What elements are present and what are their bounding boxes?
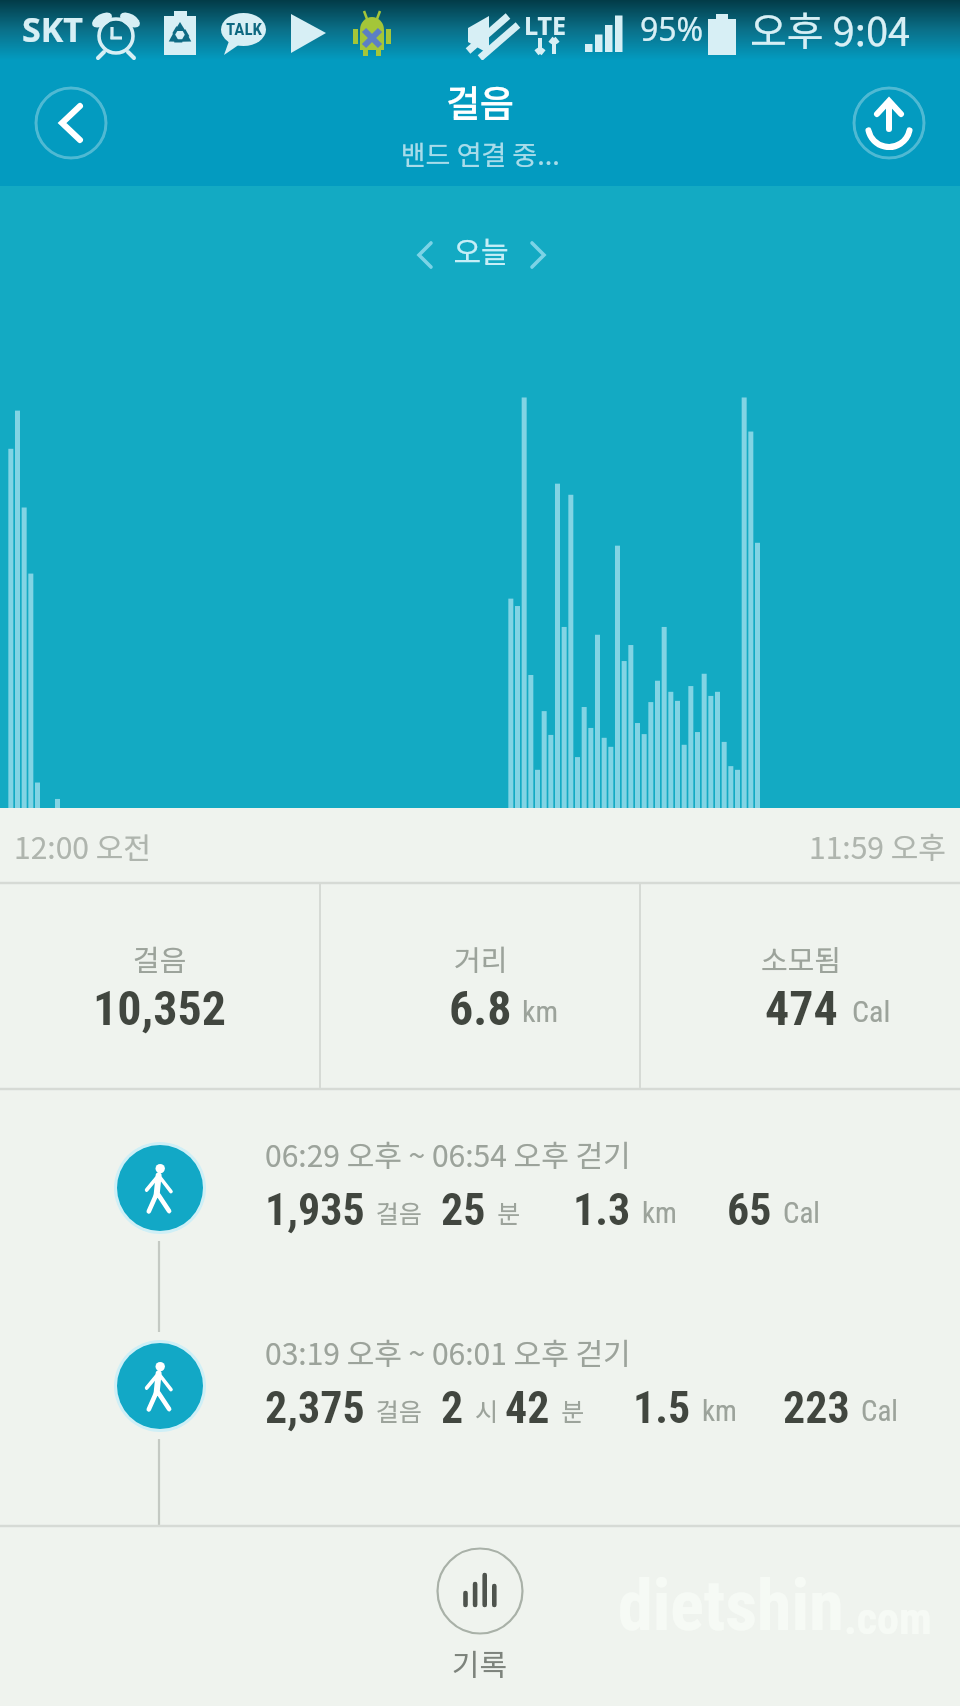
- button[interactable]: Next day: [512, 228, 566, 282]
- staticText: TALK: [226, 19, 262, 39]
- button[interactable]: 기록: [436, 1547, 524, 1684]
- button[interactable]: 06:29 오후 ~ 06:54 오후 걷기: [265, 1132, 820, 1236]
- staticText: 25: [441, 1184, 486, 1236]
- staticText: 2: [441, 1382, 464, 1434]
- staticText: 03:19 오후 ~ 06:01 오후 걷기: [265, 1330, 631, 1373]
- button[interactable]: Previous day: [397, 228, 451, 282]
- staticText: Cal: [783, 1196, 820, 1230]
- staticText: 기록: [452, 1641, 508, 1684]
- staticText: km: [642, 1196, 677, 1230]
- staticText: 분: [561, 1392, 585, 1428]
- button[interactable]: 오늘: [453, 228, 509, 282]
- button[interactable]: 거리: [320, 882, 640, 1090]
- staticText: Cal: [852, 994, 891, 1029]
- staticText: 223: [783, 1382, 850, 1434]
- staticText: 6.8: [449, 980, 512, 1036]
- staticText: 42: [505, 1382, 550, 1434]
- staticText: 걸음: [376, 1392, 423, 1428]
- staticText: SKT: [22, 6, 83, 52]
- staticText: 1,935: [265, 1184, 365, 1236]
- staticText: 걸음: [446, 74, 515, 128]
- staticText: km: [522, 994, 559, 1029]
- staticText: 밴드 연결 중...: [401, 134, 560, 173]
- staticText: 06:29 오후 ~ 06:54 오후 걷기: [265, 1132, 631, 1175]
- staticText: 11:59 오후: [809, 824, 946, 867]
- staticText: 10,352: [93, 980, 227, 1036]
- button[interactable]: 걸음: [0, 882, 320, 1090]
- staticText: 2,375: [265, 1382, 365, 1434]
- staticText: 거리: [454, 937, 508, 979]
- staticText: LTE: [524, 8, 566, 42]
- staticText: 소모됨: [761, 937, 842, 979]
- staticText: 시: [475, 1392, 499, 1428]
- staticText: Cal: [861, 1394, 898, 1428]
- staticText: 95%: [640, 7, 704, 51]
- staticText: 걸음: [376, 1194, 423, 1230]
- staticText: 걸음: [133, 937, 187, 979]
- staticText: 1.3: [573, 1184, 631, 1236]
- staticText: 474: [765, 980, 838, 1036]
- staticText: 65: [727, 1184, 772, 1236]
- staticText: 오후 9:04: [750, 0, 911, 57]
- button[interactable]: Share: [852, 86, 926, 160]
- button[interactable]: 03:19 오후 ~ 06:01 오후 걷기: [265, 1330, 898, 1434]
- button[interactable]: Back: [34, 86, 108, 160]
- staticText: dietshin: [618, 1565, 844, 1647]
- staticText: 분: [497, 1194, 521, 1230]
- button[interactable]: 소모됨: [640, 882, 960, 1090]
- staticText: km: [702, 1394, 737, 1428]
- staticText: 12:00 오전: [14, 824, 151, 867]
- staticText: 1.5: [633, 1382, 691, 1434]
